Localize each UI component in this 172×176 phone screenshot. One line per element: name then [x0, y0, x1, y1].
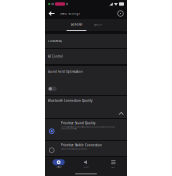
- staticText: CUSTOM EQ: [48, 39, 62, 43]
- button[interactable]: Prioritize Sound Quality: [45, 119, 127, 140]
- staticText: Prioritize Sound Quality: [61, 121, 95, 125]
- staticText: Device settings: [59, 12, 79, 15]
- staticText: Sound: [83, 166, 88, 168]
- staticText: System: [93, 23, 101, 26]
- button[interactable]: General: [66, 19, 87, 31]
- button[interactable]: Left/Right: [45, 159, 72, 168]
- staticText: Bluetooth Connection Quality: [48, 99, 92, 102]
- button[interactable]: Sound Field Optimization: [45, 66, 127, 95]
- button[interactable]: Sound: [72, 159, 100, 168]
- button[interactable]: CUSTOM EQ: [45, 34, 127, 48]
- staticText: Sound Field Optimization: [48, 70, 83, 73]
- staticText: Menu: [111, 166, 115, 168]
- button[interactable]: Bluetooth Connection Quality: [45, 96, 127, 118]
- staticText: AI Control: [48, 55, 63, 58]
- staticText: Left/Right: [56, 166, 61, 168]
- button[interactable]: Back: [46, 8, 56, 19]
- button[interactable]: AI Control: [45, 49, 127, 64]
- staticText: Connect with optimized audio quality whe…: [61, 126, 115, 129]
- staticText: General: [70, 23, 82, 26]
- button[interactable]: Menu: [100, 159, 127, 168]
- button[interactable]: Help: [115, 8, 125, 19]
- staticText: Prioritize Stable Connection: [61, 143, 102, 147]
- button[interactable]: System: [87, 19, 108, 31]
- button[interactable]: Prioritize Stable Connection: [45, 141, 127, 156]
- staticText: Stably connects to the playback device.: [61, 148, 87, 150]
